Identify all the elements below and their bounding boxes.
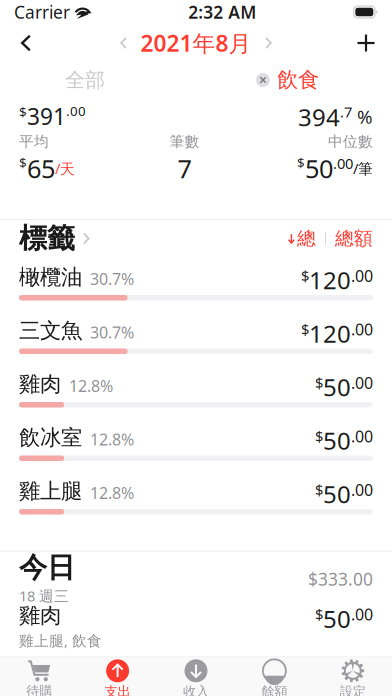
staticText: 50 [323,603,351,635]
staticText: 7 [177,152,191,185]
staticText: 30.7% [90,322,134,343]
button[interactable]: 待購 [0,657,78,696]
staticText: /天 [55,159,75,178]
staticText: 三文魚 [19,318,82,344]
staticText: $ [301,320,309,339]
button[interactable]: 飲冰室 [0,425,392,479]
staticText: 12.8% [90,482,134,503]
button[interactable]: 總額 [335,220,373,256]
staticText: 全部 [65,68,105,92]
staticText: 平均 [19,133,49,151]
staticText: 50 [305,152,333,185]
button[interactable]: 全部 [0,63,170,97]
staticText: .00 [351,265,373,286]
button[interactable]: 餘額 [235,657,314,696]
staticText: % [352,104,373,129]
button[interactable]: 雞肉 [0,372,392,425]
staticText: $ [315,480,323,500]
staticText: 12.8% [69,375,113,396]
staticText: .00 [351,426,373,447]
staticText: $ [315,427,323,446]
button[interactable]: 標籤 [19,220,89,256]
staticText: 12.8% [90,429,134,450]
staticText: .00 [351,479,373,500]
staticText: 30.7% [90,268,134,289]
staticText: .00 [351,604,373,625]
staticText: .00 [351,372,373,393]
button[interactable]: 三文魚 [0,318,392,372]
staticText: 2021年8月 [140,28,251,58]
staticText: 橄欖油 [19,264,82,290]
staticText: $ [315,605,323,624]
staticText: 50 [323,478,351,510]
staticText: $ [301,266,309,286]
staticText: 今日 [19,551,75,585]
staticText: 18 週三 [19,586,69,605]
staticText: .00 [333,154,353,173]
button[interactable]: 收入 [157,657,235,696]
staticText: 雞肉 [19,371,61,397]
staticText: 391 [27,101,66,131]
button[interactable]: 設定 [314,657,392,696]
staticText: 120 [309,318,351,349]
staticText: .7 [340,102,352,122]
staticText: 飲食 [277,67,319,93]
button[interactable]: Back [0,24,52,62]
staticText: 雞上腿, 飲食 [19,631,102,650]
button[interactable]: Add entry [340,24,392,62]
staticText: 65 [27,152,55,185]
button[interactable]: 雞肉 [0,604,392,648]
staticText: 筆數 [169,133,199,151]
staticText: $ [19,154,27,171]
button[interactable]: 飲食 [256,63,319,97]
button[interactable]: 總 [288,220,316,256]
staticText: $ [315,373,323,393]
staticText: $ [297,154,305,171]
staticText: $333.00 [308,567,373,590]
staticText: 120 [309,264,351,296]
button[interactable]: Next month [251,27,285,59]
staticText: 雞上腿 [19,478,82,504]
staticText: Carrier [14,0,70,23]
staticText: 50 [323,371,351,403]
staticText: 50 [323,425,351,456]
staticText: 2:32 AM [188,0,256,23]
button[interactable]: 雞上腿 [0,479,392,532]
staticText: /筆 [353,159,373,178]
staticText: 總額 [335,227,373,250]
staticText: 394 [298,101,340,133]
button[interactable]: 橄欖油 [0,265,392,318]
staticText: 餘額 [261,683,287,696]
staticText: 總 [297,227,316,250]
staticText: 設定 [340,683,366,696]
staticText: 待購 [26,683,52,696]
button[interactable]: Previous month [106,27,140,59]
staticText: $ [19,103,27,121]
staticText: 收入 [183,683,209,696]
staticText: 飲冰室 [19,425,82,451]
button[interactable]: 支出 [78,657,157,696]
staticText: .00 [66,102,86,120]
staticText: 支出 [105,683,131,696]
staticText: 中位數 [328,133,373,151]
staticText: 雞肉 [19,603,61,629]
staticText: .00 [351,319,373,340]
staticText: 標籤 [19,221,75,256]
